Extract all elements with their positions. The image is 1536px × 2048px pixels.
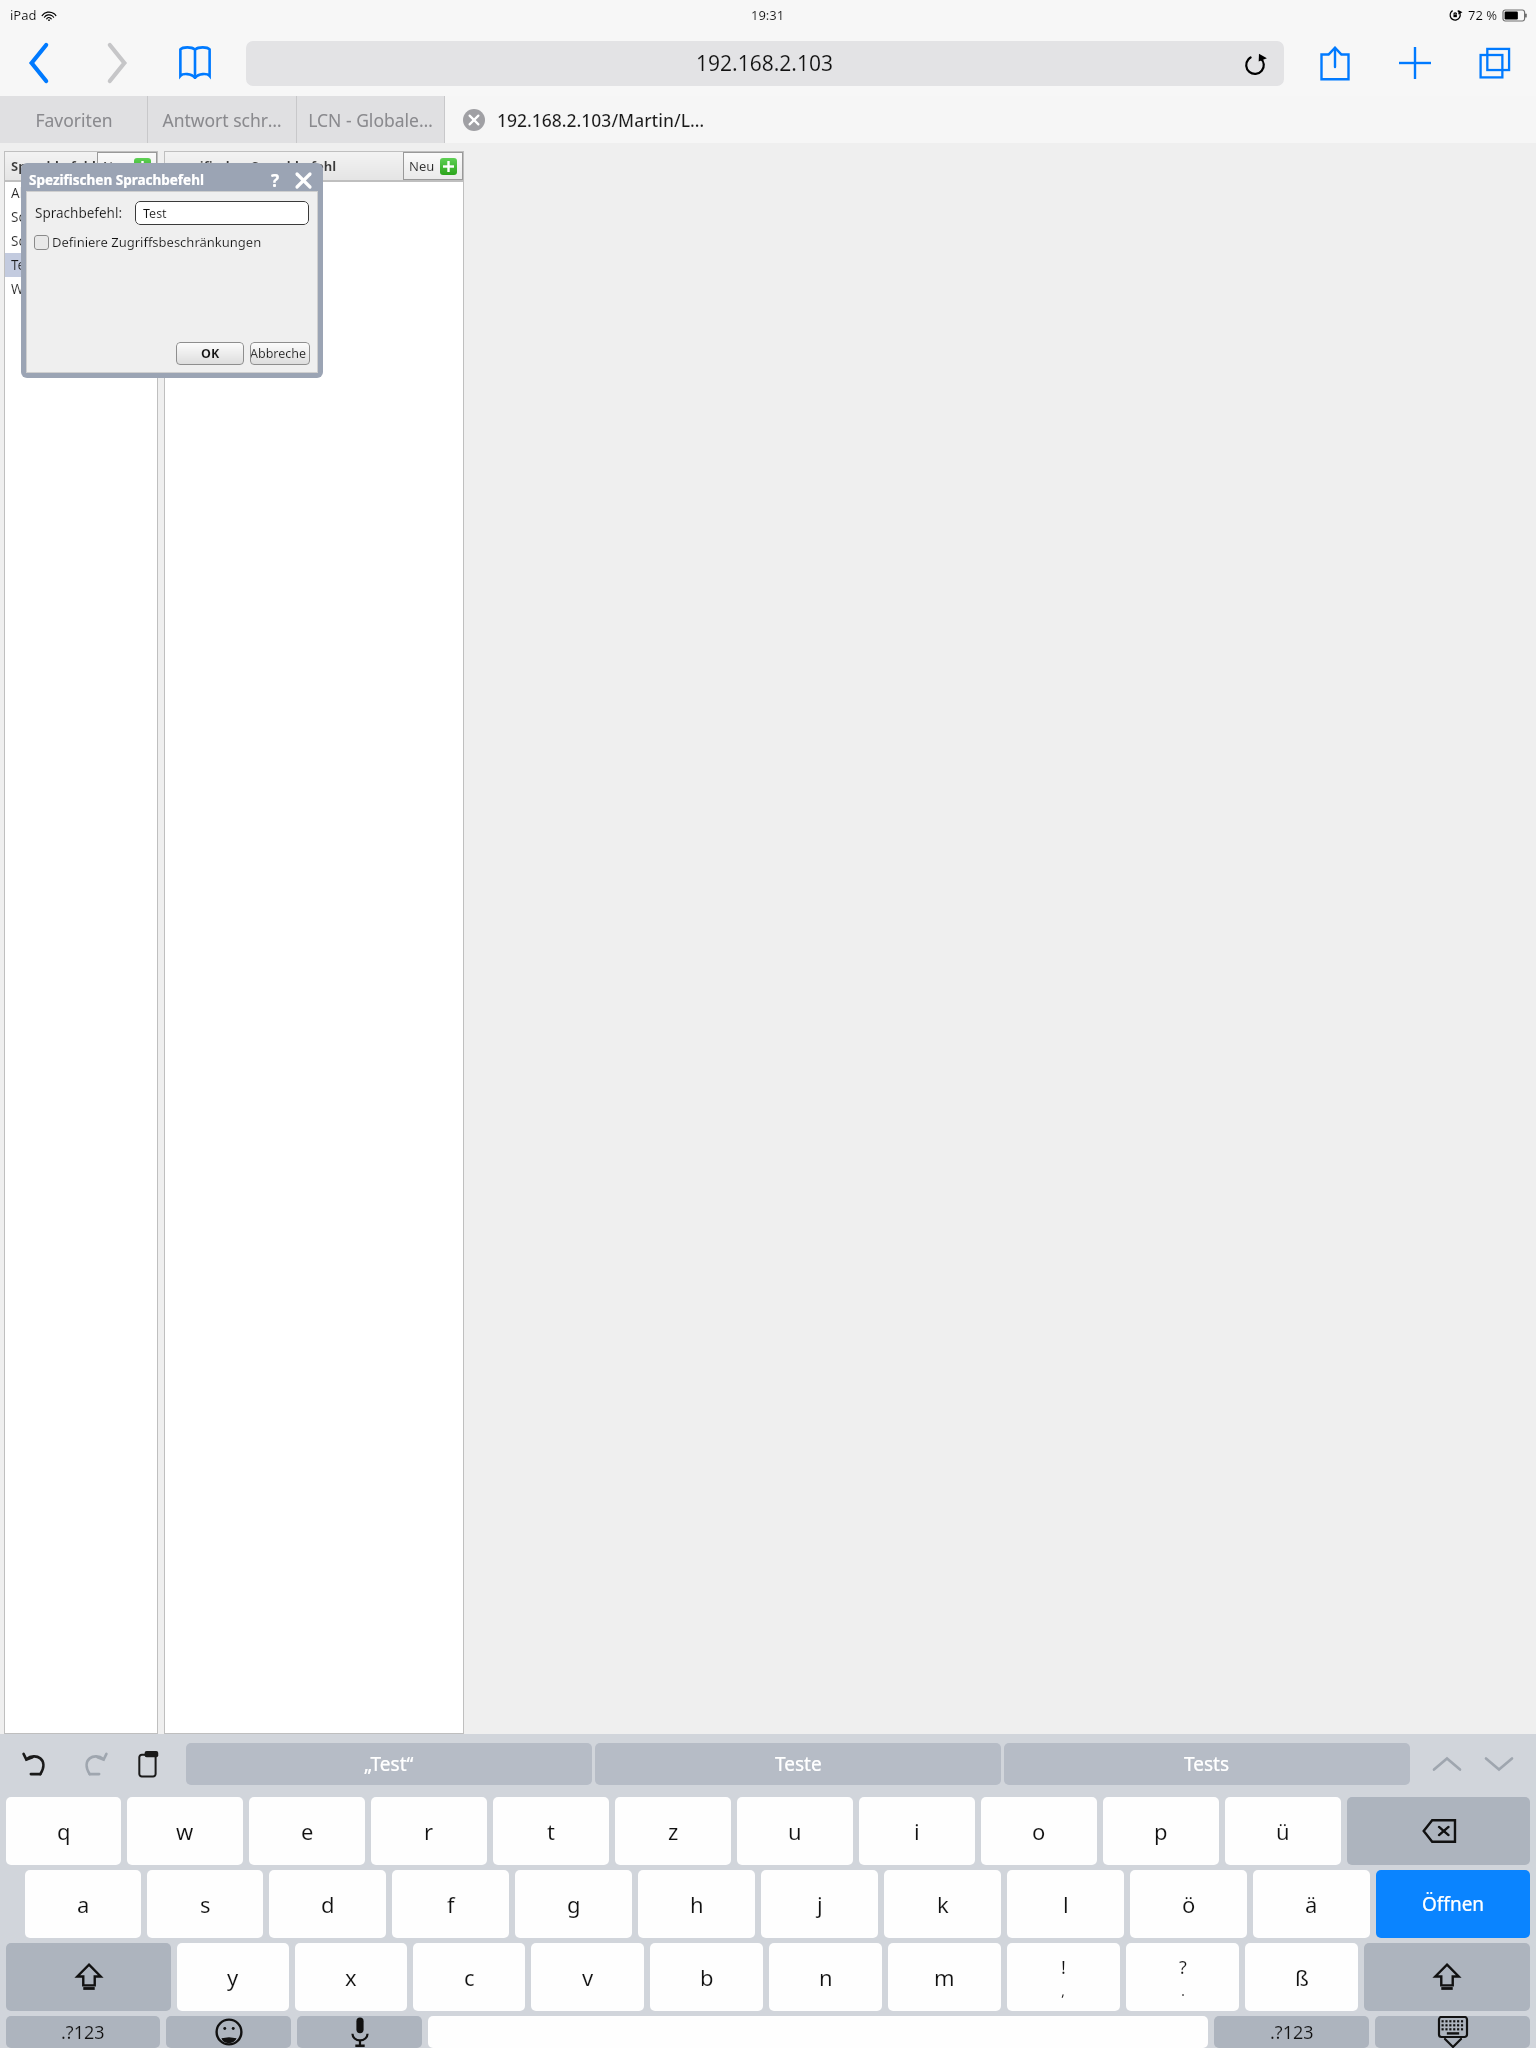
button[interactable]: Öffnen bbox=[1376, 1870, 1530, 1938]
button[interactable]: ß bbox=[1245, 1943, 1358, 2011]
button[interactable]: h bbox=[638, 1870, 755, 1938]
button[interactable]: Undo bbox=[14, 1741, 60, 1787]
button[interactable]: a bbox=[25, 1870, 141, 1938]
button[interactable]: Alle bbox=[4, 181, 158, 205]
button[interactable]: Schl bbox=[4, 205, 158, 229]
button[interactable]: Close Tab bbox=[461, 107, 487, 133]
button[interactable]: s bbox=[147, 1870, 263, 1938]
button[interactable]: Abbrechen bbox=[250, 342, 310, 365]
button[interactable]: l bbox=[1007, 1870, 1124, 1938]
staticText: .?123 bbox=[1270, 2020, 1314, 2045]
staticText: LCN - Globales Visualisier… bbox=[307, 108, 434, 132]
button[interactable]: p bbox=[1103, 1797, 1219, 1865]
button[interactable]: Tests bbox=[1004, 1743, 1410, 1785]
staticText: Sprachbefehl: bbox=[35, 204, 123, 222]
button[interactable]: k bbox=[884, 1870, 1001, 1938]
staticText: Alle bbox=[11, 184, 35, 202]
button[interactable]: m bbox=[888, 1943, 1001, 2011]
button[interactable]: c bbox=[413, 1943, 525, 2011]
button[interactable]: Emoji bbox=[166, 2016, 291, 2048]
button[interactable]: ö bbox=[1130, 1870, 1247, 1938]
button[interactable]: „Test“ bbox=[186, 1743, 592, 1785]
button[interactable]: b bbox=[650, 1943, 763, 2011]
button[interactable]: Close bbox=[292, 169, 314, 191]
button[interactable]: u bbox=[737, 1797, 853, 1865]
button[interactable]: e bbox=[249, 1797, 365, 1865]
button[interactable]: w bbox=[127, 1797, 243, 1865]
button[interactable]: Previous field bbox=[1424, 1741, 1470, 1787]
staticText: ß bbox=[1295, 1962, 1309, 1992]
button[interactable]: g bbox=[515, 1870, 632, 1938]
button[interactable]: Reload bbox=[1240, 49, 1270, 79]
button[interactable]: Back bbox=[12, 35, 68, 91]
button[interactable]: Show Tabs bbox=[1466, 35, 1524, 91]
staticText: Sprachbefehl bbox=[11, 157, 96, 175]
staticText: u bbox=[788, 1816, 802, 1846]
staticText: Test bbox=[143, 205, 167, 222]
button[interactable]: n bbox=[769, 1943, 882, 2011]
staticText: r bbox=[424, 1816, 434, 1846]
button[interactable]: Definiere Zugriffsbeschränkungen bbox=[34, 233, 318, 251]
staticText: Test bbox=[11, 256, 37, 274]
button[interactable]: j bbox=[761, 1870, 878, 1938]
staticText: spezifischer Sprachbefehl bbox=[171, 157, 337, 175]
button[interactable]: Hide keyboard bbox=[1375, 2016, 1530, 2048]
button[interactable]: Teste bbox=[595, 1743, 1001, 1785]
button[interactable]: .?123 bbox=[1214, 2016, 1369, 2048]
button[interactable]: r bbox=[371, 1797, 487, 1865]
button[interactable]: LCN - Globales Visualisier… bbox=[297, 96, 444, 143]
button[interactable]: Test bbox=[4, 253, 158, 277]
button[interactable]: Redo bbox=[70, 1741, 116, 1787]
button[interactable]: Next field bbox=[1476, 1741, 1522, 1787]
button[interactable]: x bbox=[295, 1943, 407, 2011]
staticText: c bbox=[464, 1962, 475, 1992]
button[interactable]: Shift bbox=[6, 1943, 171, 2011]
staticText: Woh bbox=[11, 280, 40, 298]
button[interactable]: i bbox=[859, 1797, 975, 1865]
button[interactable]: y bbox=[177, 1943, 289, 2011]
button[interactable]: q bbox=[6, 1797, 121, 1865]
staticText: y bbox=[227, 1962, 239, 1992]
button[interactable]: ä bbox=[1253, 1870, 1370, 1938]
button[interactable]: Neu bbox=[409, 152, 457, 180]
button[interactable]: New Tab bbox=[1386, 35, 1444, 91]
staticText: . bbox=[1181, 1980, 1186, 2000]
button[interactable]: OK bbox=[176, 342, 244, 365]
button[interactable]: f bbox=[392, 1870, 509, 1938]
button[interactable]: Antwort schreiben an GVS… bbox=[148, 96, 296, 143]
staticText: iPad bbox=[10, 6, 37, 24]
button[interactable]: Bookmarks bbox=[166, 35, 224, 91]
button[interactable]: ! bbox=[1007, 1943, 1120, 2011]
button[interactable]: Dictation bbox=[297, 2016, 422, 2048]
button[interactable]: Shift right bbox=[1364, 1943, 1530, 2011]
staticText: p bbox=[1154, 1816, 1168, 1846]
button[interactable]: d bbox=[269, 1870, 386, 1938]
button[interactable]: Paste bbox=[126, 1741, 172, 1787]
button[interactable]: z bbox=[615, 1797, 731, 1865]
staticText: ö bbox=[1182, 1889, 1196, 1919]
staticText: OK bbox=[201, 345, 220, 362]
button[interactable]: Favoriten bbox=[0, 96, 147, 143]
button[interactable]: Share bbox=[1306, 35, 1364, 91]
button[interactable]: Forward bbox=[88, 35, 144, 91]
button[interactable]: Help bbox=[264, 169, 286, 191]
button[interactable]: v bbox=[531, 1943, 644, 2011]
button[interactable]: Backspace bbox=[1347, 1797, 1530, 1865]
button[interactable]: Neu bbox=[103, 152, 151, 180]
staticText: Neu bbox=[103, 157, 129, 175]
button[interactable]: Close Tab bbox=[445, 96, 1536, 143]
staticText: e bbox=[301, 1816, 314, 1846]
staticText: , bbox=[1061, 1980, 1066, 2000]
staticText: a bbox=[77, 1889, 90, 1919]
staticText: z bbox=[668, 1816, 679, 1846]
button[interactable]: .?123 bbox=[6, 2016, 160, 2048]
button[interactable]: Test bbox=[135, 201, 309, 225]
button[interactable]: o bbox=[981, 1797, 1097, 1865]
button[interactable]: Woh bbox=[4, 277, 158, 301]
button[interactable]: Schl bbox=[4, 229, 158, 253]
button[interactable]: ü bbox=[1225, 1797, 1341, 1865]
button[interactable]: t bbox=[493, 1797, 609, 1865]
button[interactable]: ? bbox=[1126, 1943, 1239, 2011]
button[interactable]: 192.168.2.103 bbox=[246, 41, 1284, 86]
